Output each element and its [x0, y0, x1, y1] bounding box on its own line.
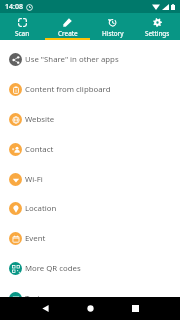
staticText: Location	[25, 203, 57, 214]
staticText: Scan	[15, 29, 30, 38]
button[interactable]: Content from clipboard	[0, 74, 180, 104]
staticText: Text	[25, 293, 40, 304]
staticText: Wi-Fi	[25, 174, 43, 185]
button[interactable]: Create	[45, 13, 90, 40]
staticText: Content from clipboard	[25, 84, 111, 95]
button[interactable]: Contact	[0, 134, 180, 164]
button[interactable]: Wi-Fi	[0, 164, 180, 194]
staticText: Website	[25, 114, 55, 125]
staticText: Create	[58, 29, 78, 38]
button[interactable]: Settings	[135, 13, 180, 40]
button[interactable]: Recents	[128, 301, 143, 316]
staticText: Use "Share" in other apps	[25, 54, 119, 65]
staticText: Settings	[145, 29, 170, 38]
staticText: 14:08	[5, 2, 23, 12]
button[interactable]: Scan	[0, 13, 45, 40]
button[interactable]: Event	[0, 223, 180, 253]
button[interactable]: Text	[0, 283, 180, 313]
button[interactable]: Website	[0, 104, 180, 134]
button[interactable]: Back	[38, 301, 53, 316]
staticText: Event	[25, 233, 46, 244]
button[interactable]: Location	[0, 193, 180, 223]
button[interactable]: History	[90, 13, 135, 40]
staticText: More QR codes	[25, 263, 81, 274]
button[interactable]: Use "Share" in other apps	[0, 44, 180, 74]
staticText: Contact	[25, 144, 54, 155]
staticText: History	[102, 29, 124, 38]
button[interactable]: Home	[83, 301, 98, 316]
button[interactable]: More QR codes	[0, 253, 180, 283]
